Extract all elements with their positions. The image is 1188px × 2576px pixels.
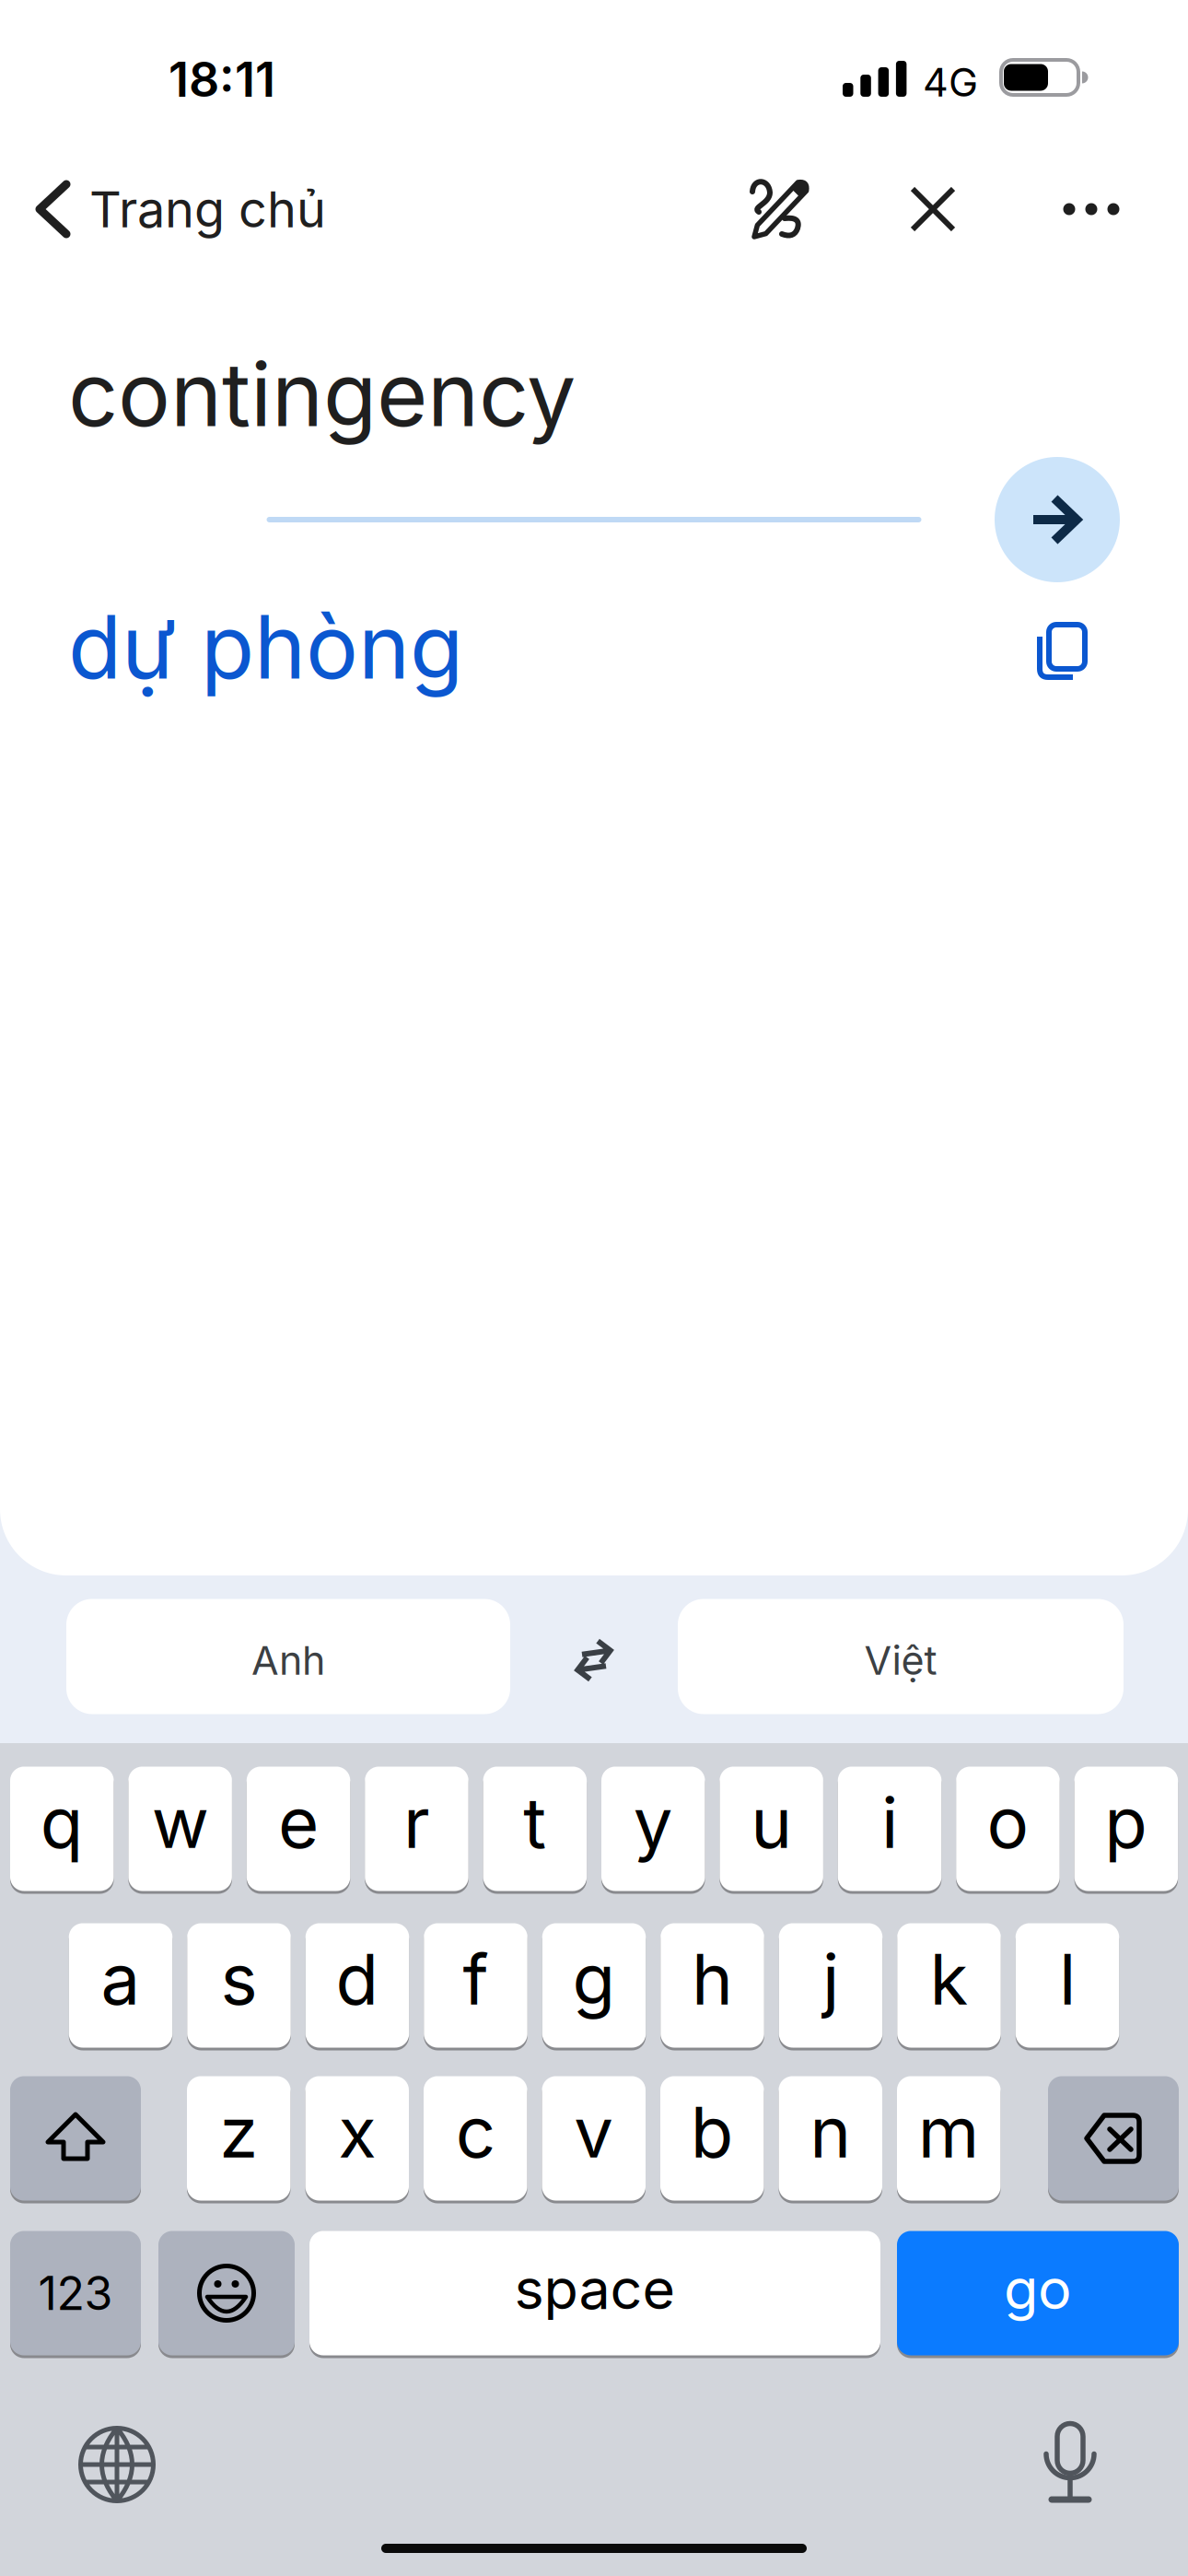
button[interactable] bbox=[728, 158, 829, 260]
staticText: l bbox=[1059, 1938, 1076, 2020]
button[interactable] bbox=[1041, 158, 1142, 260]
button[interactable] bbox=[71, 2418, 163, 2511]
button[interactable]: j bbox=[779, 1922, 883, 2049]
staticText: 4G bbox=[923, 59, 978, 105]
button[interactable]: l bbox=[1016, 1922, 1119, 2049]
button[interactable] bbox=[995, 457, 1120, 582]
button[interactable]: k bbox=[897, 1922, 1001, 2049]
staticText: m bbox=[918, 2091, 980, 2173]
button[interactable]: p bbox=[1074, 1765, 1178, 1892]
button[interactable]: a bbox=[69, 1922, 172, 2049]
staticText: q bbox=[40, 1781, 84, 1864]
staticText: contingency bbox=[68, 343, 576, 446]
staticText: v bbox=[574, 2091, 614, 2173]
button[interactable]: b bbox=[660, 2075, 764, 2202]
staticText: k bbox=[930, 1938, 968, 2020]
staticText: a bbox=[101, 1938, 140, 2020]
staticText: Trang chủ bbox=[89, 180, 326, 238]
button[interactable]: space bbox=[309, 2230, 880, 2357]
staticText: space bbox=[514, 2255, 676, 2322]
staticText: x bbox=[338, 2091, 376, 2173]
button[interactable] bbox=[158, 2230, 295, 2357]
staticText: r bbox=[403, 1781, 430, 1864]
staticText: h bbox=[692, 1938, 733, 2020]
button[interactable]: g bbox=[542, 1922, 646, 2049]
staticText: go bbox=[1004, 2255, 1072, 2322]
staticText: Việt bbox=[864, 1637, 937, 1684]
button[interactable] bbox=[1048, 2075, 1179, 2202]
staticText: e bbox=[278, 1781, 319, 1864]
button[interactable] bbox=[1039, 2419, 1103, 2506]
button[interactable]: w bbox=[128, 1765, 232, 1892]
button[interactable] bbox=[553, 1619, 635, 1702]
staticText: 123 bbox=[38, 2266, 113, 2320]
staticText: n bbox=[810, 2091, 851, 2173]
staticText: y bbox=[633, 1781, 673, 1864]
button[interactable]: go bbox=[897, 2230, 1179, 2357]
button[interactable]: u bbox=[720, 1765, 823, 1892]
staticText: p bbox=[1105, 1781, 1148, 1864]
staticText: j bbox=[822, 1938, 839, 2020]
button[interactable] bbox=[1037, 620, 1092, 685]
staticText: z bbox=[219, 2091, 258, 2173]
button[interactable]: q bbox=[10, 1765, 114, 1892]
staticText: Anh bbox=[251, 1637, 325, 1684]
button[interactable]: 123 bbox=[10, 2230, 141, 2357]
staticText: w bbox=[152, 1781, 209, 1864]
button[interactable]: e bbox=[247, 1765, 350, 1892]
staticText: o bbox=[987, 1781, 1029, 1864]
staticText: u bbox=[751, 1781, 792, 1864]
staticText: i bbox=[881, 1781, 898, 1864]
button[interactable]: Anh bbox=[66, 1599, 510, 1714]
button[interactable]: c bbox=[424, 2075, 527, 2202]
button[interactable]: x bbox=[305, 2075, 409, 2202]
button[interactable]: h bbox=[660, 1922, 764, 2049]
button[interactable] bbox=[882, 158, 984, 260]
staticText: dự phòng bbox=[68, 595, 463, 698]
button[interactable]: z bbox=[187, 2075, 291, 2202]
button[interactable]: i bbox=[838, 1765, 941, 1892]
staticText: g bbox=[572, 1938, 616, 2020]
staticText: f bbox=[463, 1938, 489, 2020]
button[interactable]: r bbox=[365, 1765, 468, 1892]
staticText: c bbox=[456, 2091, 495, 2173]
button[interactable]: d bbox=[306, 1922, 409, 2049]
button[interactable]: y bbox=[601, 1765, 705, 1892]
staticText: 18:11 bbox=[169, 51, 275, 107]
staticText: d bbox=[336, 1938, 379, 2020]
button[interactable]: m bbox=[897, 2075, 1001, 2202]
button[interactable] bbox=[10, 2075, 141, 2202]
button[interactable]: o bbox=[956, 1765, 1060, 1892]
button[interactable]: t bbox=[483, 1765, 587, 1892]
staticText: b bbox=[691, 2091, 734, 2173]
staticText: s bbox=[221, 1938, 257, 2020]
button[interactable]: Trang chủ bbox=[28, 158, 424, 260]
button[interactable]: f bbox=[424, 1922, 527, 2049]
staticText: t bbox=[523, 1781, 546, 1864]
button[interactable]: Việt bbox=[678, 1599, 1124, 1714]
button[interactable]: n bbox=[779, 2075, 882, 2202]
button[interactable]: s bbox=[187, 1922, 291, 2049]
button[interactable]: v bbox=[542, 2075, 646, 2202]
